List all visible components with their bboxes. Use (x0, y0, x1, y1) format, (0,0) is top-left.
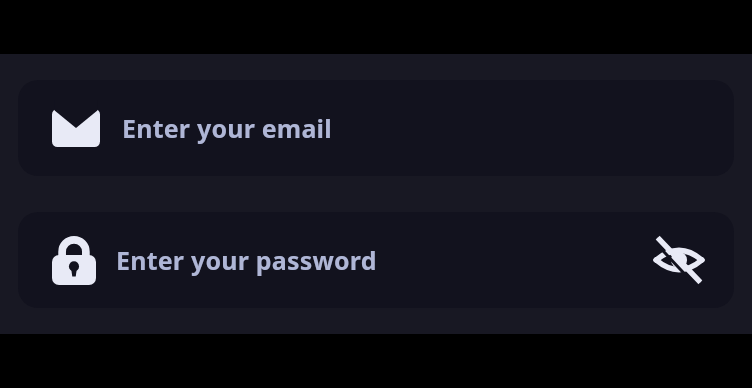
staticText: Enter your password (116, 243, 377, 277)
button[interactable]: Show password (648, 229, 710, 291)
button[interactable]: Enter your password (18, 212, 734, 308)
staticText: Enter your email (122, 111, 332, 145)
button[interactable]: Enter your email (18, 80, 734, 176)
